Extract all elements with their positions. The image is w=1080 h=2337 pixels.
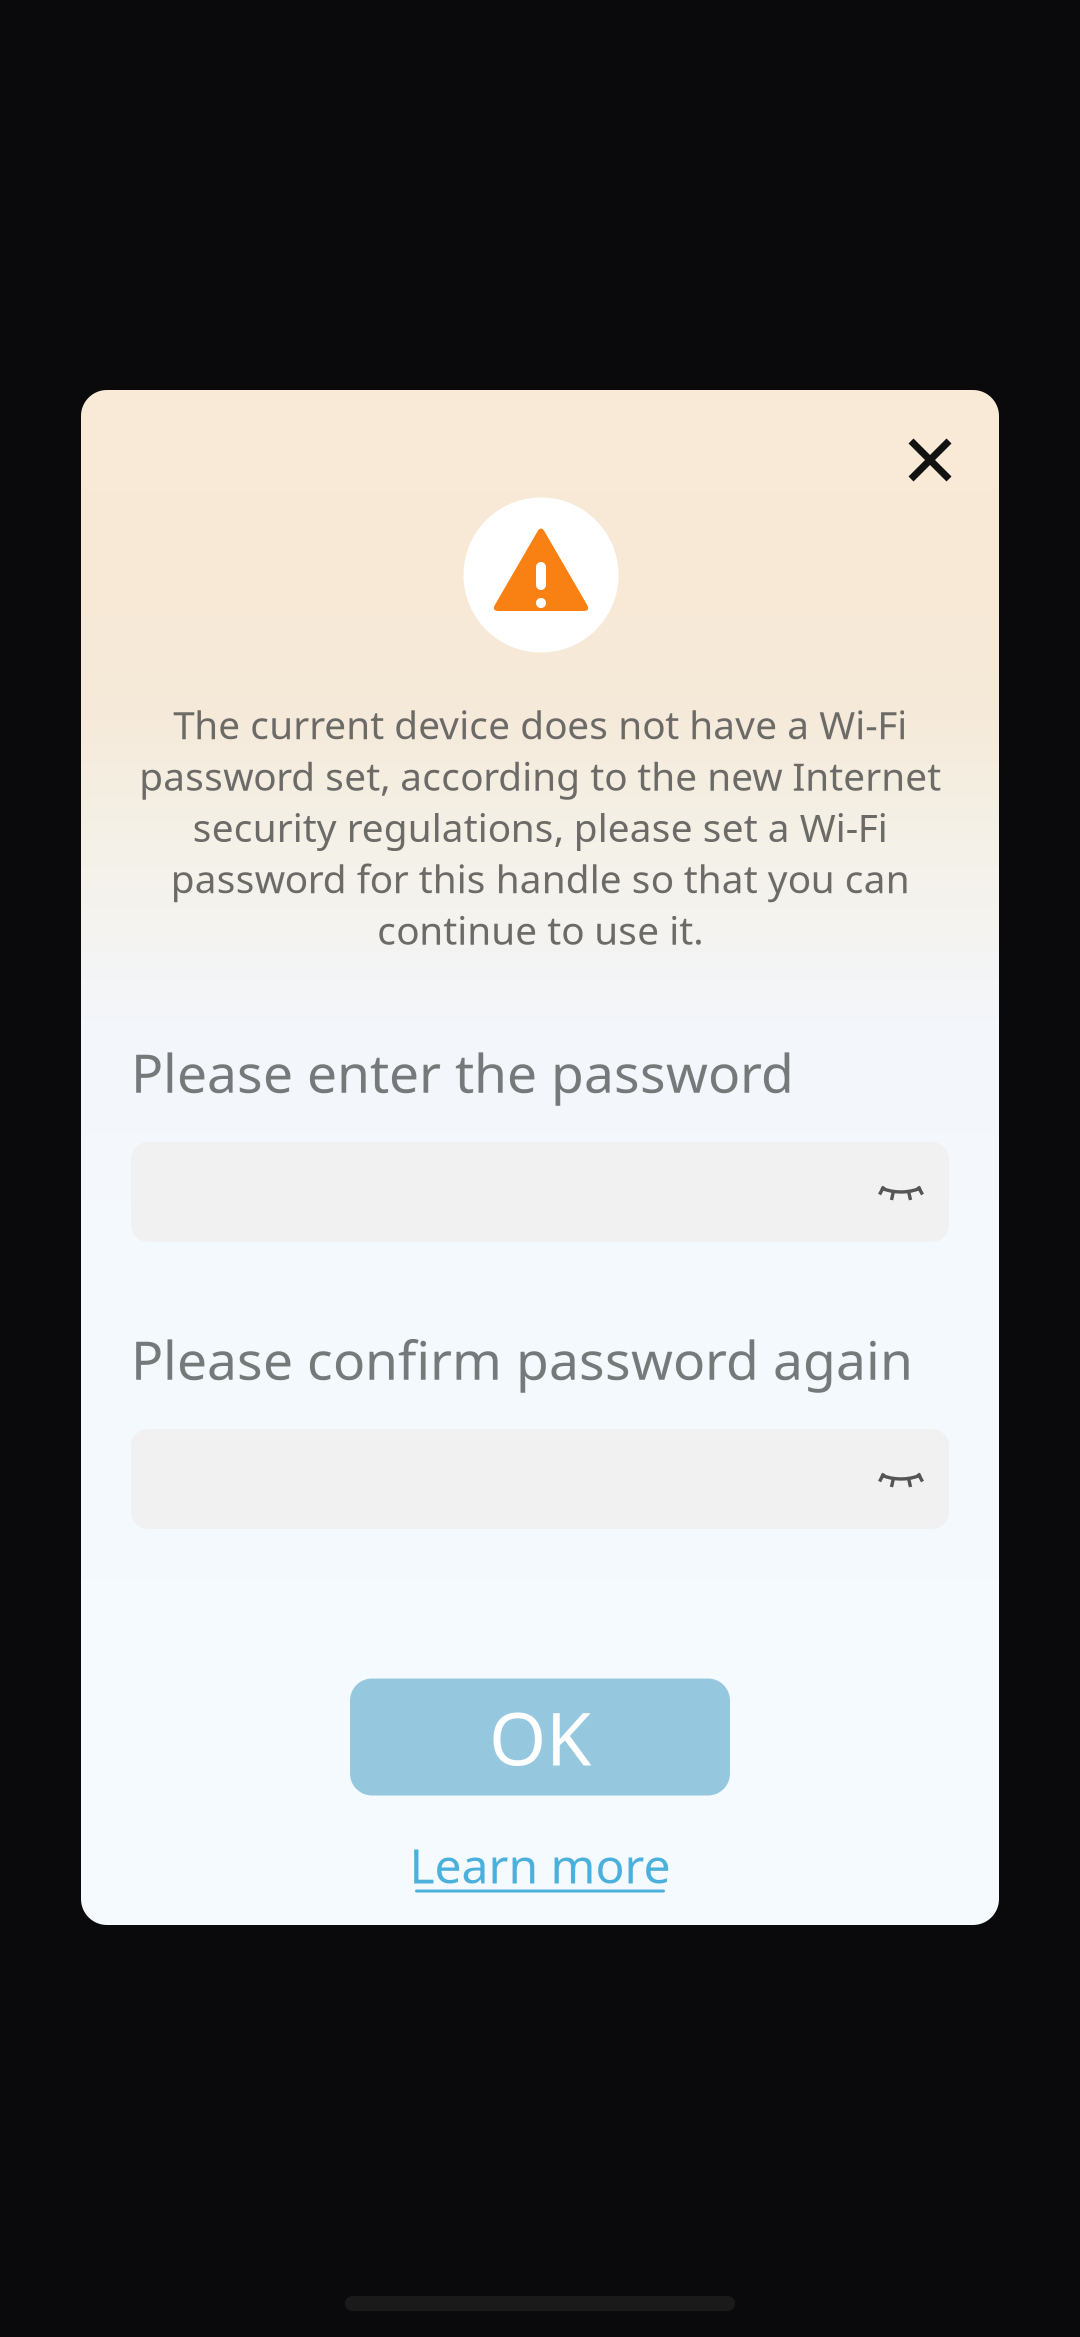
staticText: The current device does not have a Wi-Fi… [139,699,941,955]
button[interactable]: OK [350,1678,730,1795]
button[interactable]: Close [878,408,981,511]
button[interactable]: Show password [131,1429,949,1529]
staticText: Please enter the password [131,1037,794,1107]
button[interactable]: Show password [131,1142,949,1242]
staticText: OK [489,1688,591,1786]
staticText: Please confirm password again [131,1324,913,1394]
button[interactable]: Learn more [390,1817,690,1913]
staticText: Learn more [409,1833,670,1897]
staticText: Download [233,384,847,546]
